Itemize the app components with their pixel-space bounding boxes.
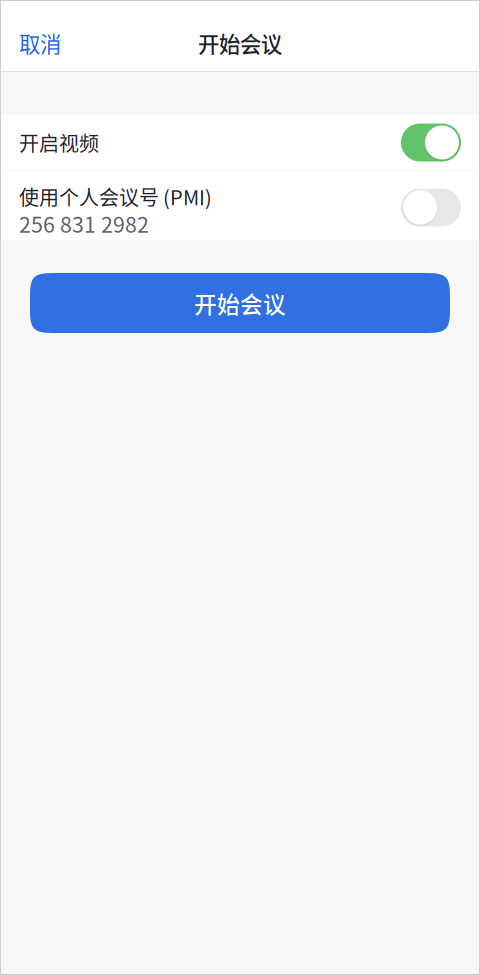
staticText: 256 831 2982 — [19, 208, 149, 239]
staticText: 开始会议 — [194, 287, 286, 319]
button[interactable]: 开始会议 — [30, 273, 450, 333]
staticText: 取消 — [19, 28, 61, 58]
staticText: 使用个人会议号 (PMI) — [19, 182, 212, 211]
button[interactable]: 开启视频 — [401, 123, 461, 161]
button[interactable]: 使用个人会议号 (PMI) — [401, 188, 461, 226]
button[interactable]: 开启视频 — [0, 115, 480, 170]
staticText: 开始会议 — [198, 28, 282, 58]
staticText: 开启视频 — [19, 128, 99, 157]
button[interactable]: 使用个人会议号 (PMI) — [0, 171, 480, 240]
button[interactable]: 取消 — [0, 19, 75, 67]
